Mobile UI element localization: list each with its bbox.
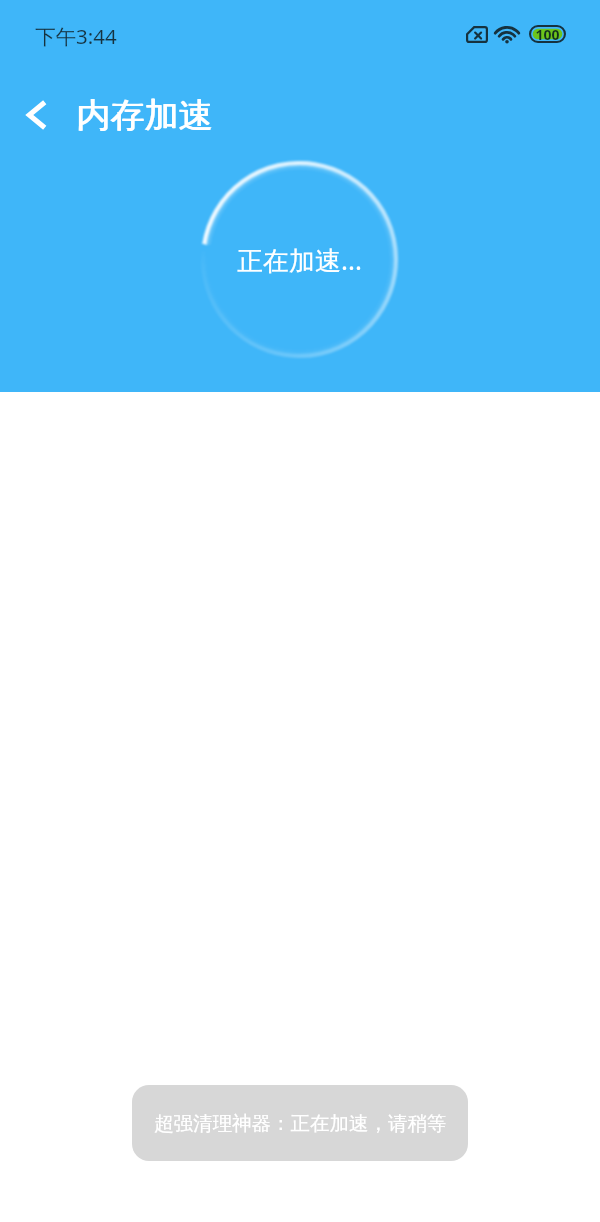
- button[interactable]: Back: [14, 92, 60, 138]
- staticText: 超强清理神器：正在加速，请稍等: [154, 1111, 447, 1136]
- other: Wi-Fi connected: [494, 25, 520, 44]
- staticText: 内存加速: [77, 94, 213, 137]
- staticText: 下午3:44: [35, 22, 117, 50]
- staticText: 100: [535, 25, 560, 43]
- other: No SIM card: [466, 26, 488, 43]
- staticText: 内存加速: [76, 94, 212, 137]
- button[interactable]: 超强清理神器：正在加速，请稍等: [132, 1085, 468, 1161]
- staticText: 正在加速...: [237, 242, 362, 278]
- other: Battery 100 percent: [529, 25, 566, 43]
- button[interactable]: 内存加速: [76, 94, 212, 137]
